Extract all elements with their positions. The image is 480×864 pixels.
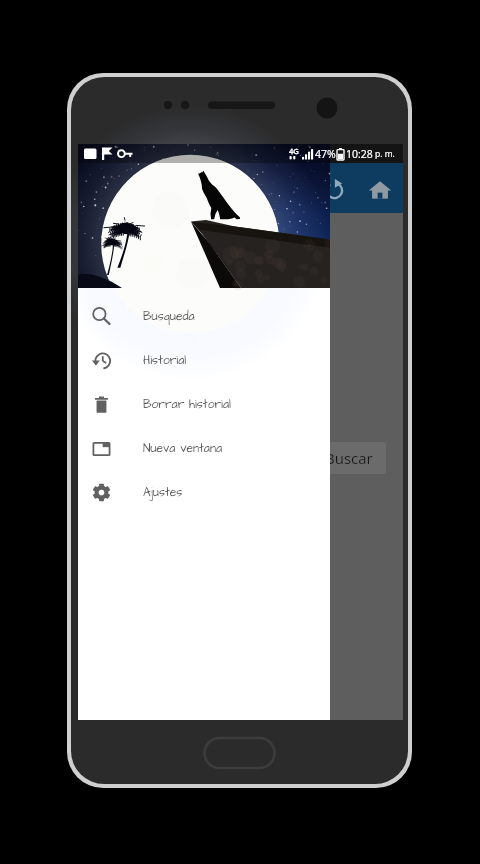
button[interactable]: Busqueda [78,294,330,338]
button[interactable]: Refresh [311,167,357,213]
staticText: Busqueda [143,308,195,325]
staticText: 4G [289,146,299,156]
staticText: 10:28 [346,147,373,161]
button[interactable]: Historial [78,338,330,382]
button[interactable]: Nueva ventana [78,426,330,470]
staticText: Nueva ventana [143,440,223,457]
button[interactable]: Ajustes [78,470,330,514]
staticText: 47% [315,147,336,161]
staticText: Borrar historial [143,396,231,413]
staticText: Buscar [325,448,373,468]
staticText: p. m. [375,148,395,160]
staticText: Historial [143,352,187,369]
staticText: Ajustes [143,484,183,501]
button[interactable]: Borrar historial [78,382,330,426]
button[interactable]: Buscar [312,442,386,474]
button[interactable]: Home [357,167,403,213]
